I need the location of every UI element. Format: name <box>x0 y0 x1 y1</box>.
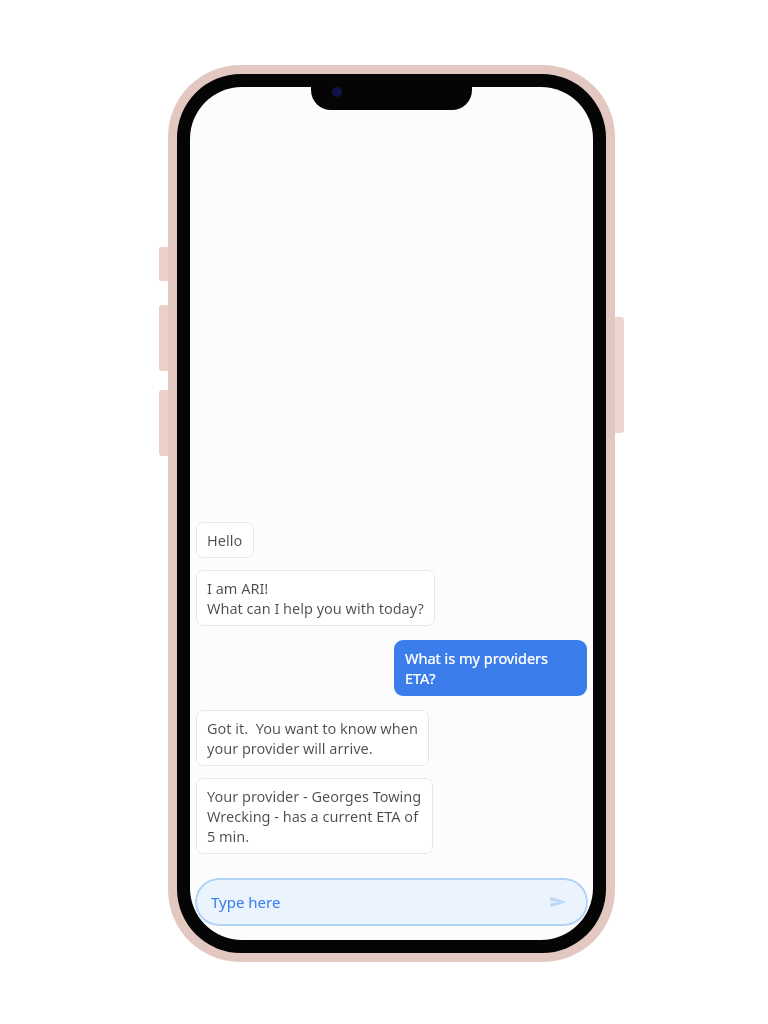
button[interactable]: Your provider - Georges Towing <box>196 778 433 854</box>
staticText: What is my providers <box>405 648 548 668</box>
staticText: Wrecking - has a current ETA of <box>207 806 419 826</box>
staticText: Got it. You want to know when <box>207 718 418 738</box>
staticText: Type here <box>211 892 281 912</box>
button[interactable]: Got it. You want to know when <box>196 710 429 766</box>
button[interactable]: I am ARI! <box>196 570 435 626</box>
staticText: I am ARI! <box>207 578 269 598</box>
staticText: 5 min. <box>207 826 250 846</box>
staticText: ETA? <box>405 668 436 688</box>
button[interactable]: What is my providers <box>394 640 587 696</box>
staticText: Hello <box>207 530 243 550</box>
staticText: What can I help you with today? <box>207 598 424 618</box>
button[interactable]: Hello <box>196 522 254 558</box>
button[interactable]: Send <box>544 888 572 916</box>
button[interactable]: Type here <box>195 878 588 926</box>
staticText: Your provider - Georges Towing <box>207 786 422 806</box>
staticText: your provider will arrive. <box>207 738 373 758</box>
